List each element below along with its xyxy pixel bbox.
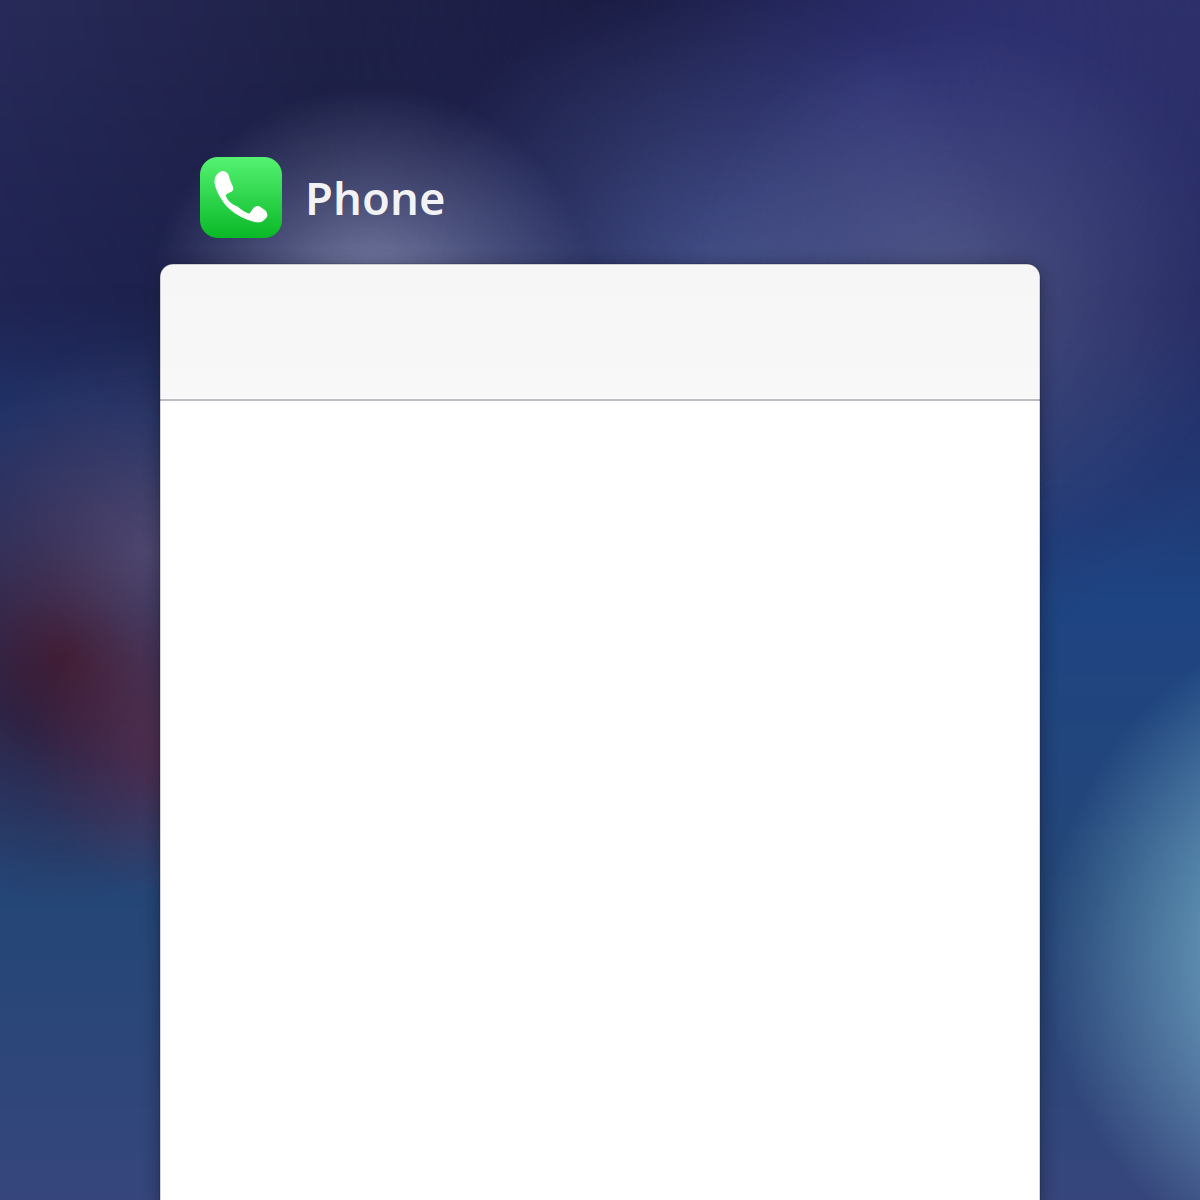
button[interactable]: Phone — [200, 157, 1040, 238]
button[interactable]: Phone app snapshot — [160, 264, 1040, 1200]
staticText: Phone — [305, 167, 446, 228]
